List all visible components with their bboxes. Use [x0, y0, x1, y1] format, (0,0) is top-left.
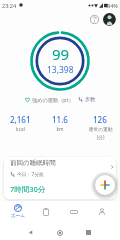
staticText: 歩数 [85, 96, 96, 103]
button[interactable]: Recent apps [79, 223, 98, 240]
button[interactable]: Back [21, 223, 40, 240]
staticText: 2,161 [10, 114, 31, 125]
staticText: 23:24 [2, 2, 17, 9]
staticText: 7時間30分 [10, 184, 46, 194]
button[interactable]: Home [4, 201, 32, 222]
button[interactable]: Browse [60, 201, 88, 222]
staticText: 強めの運動（pt） [32, 96, 74, 103]
button[interactable]: 11.6 [40, 114, 80, 133]
staticText: kcal [16, 126, 25, 133]
button[interactable]: Home [50, 223, 69, 240]
button[interactable]: Add [95, 175, 115, 195]
staticText: ホーム [11, 213, 25, 219]
staticText: 13,398 [47, 64, 74, 76]
staticText: 126 [93, 114, 107, 125]
button[interactable]: Help [87, 12, 101, 26]
staticText: 99 [52, 44, 70, 64]
button[interactable]: Journal [32, 201, 60, 222]
button[interactable]: 2,161 [0, 114, 40, 133]
staticText: 84% [107, 2, 118, 9]
staticText: 通常の運動 (分) [88, 126, 113, 141]
button[interactable]: Profile [88, 201, 116, 222]
staticText: 11.6 [52, 114, 68, 125]
button[interactable]: 前回の睡眠時間 [4, 157, 116, 199]
staticText: 今日・7分前 [17, 171, 44, 178]
button[interactable]: 126 [80, 114, 120, 141]
staticText: 前回の睡眠時間 [10, 159, 56, 167]
button[interactable]: Account [102, 12, 116, 26]
staticText: km [56, 126, 64, 133]
